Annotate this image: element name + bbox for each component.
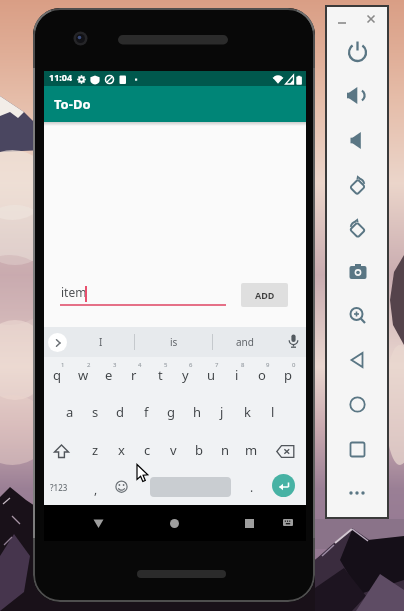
staticText: a <box>66 403 74 421</box>
staticText: 5 <box>164 361 168 369</box>
button[interactable]: a <box>59 400 81 424</box>
staticText: is <box>170 335 178 349</box>
staticText: r <box>131 366 137 384</box>
staticText: 11:04 <box>49 71 73 83</box>
button[interactable] <box>48 333 67 352</box>
staticText: o <box>258 366 266 384</box>
staticText: 3 <box>113 361 117 369</box>
button[interactable]: . <box>250 479 260 497</box>
button[interactable] <box>365 13 377 25</box>
button[interactable]: f <box>135 400 157 424</box>
button[interactable]: i <box>226 363 248 387</box>
staticText: e <box>105 366 113 384</box>
button[interactable]: s <box>84 400 106 424</box>
button[interactable] <box>53 444 70 459</box>
staticText: j <box>220 403 224 421</box>
staticText: i <box>235 366 239 384</box>
button[interactable]: m <box>240 438 262 462</box>
button[interactable] <box>348 306 369 327</box>
staticText: g <box>167 403 175 421</box>
staticText: 9 <box>266 361 270 369</box>
button[interactable]: v <box>162 438 184 462</box>
button[interactable] <box>336 14 348 26</box>
staticText: p <box>284 366 292 384</box>
staticText: z <box>92 441 99 459</box>
button[interactable]: y <box>174 363 196 387</box>
button[interactable]: n <box>214 438 236 462</box>
button[interactable]: ?123 <box>50 481 76 495</box>
staticText: q <box>53 366 61 384</box>
staticText: l <box>271 403 275 421</box>
button[interactable] <box>348 395 369 416</box>
button[interactable] <box>276 445 295 458</box>
staticText: n <box>221 441 230 459</box>
staticText: 1 <box>61 361 65 369</box>
button[interactable] <box>348 440 369 461</box>
button[interactable]: l <box>262 400 284 424</box>
staticText: To-Do <box>54 95 91 113</box>
button[interactable] <box>347 41 368 62</box>
button[interactable] <box>348 351 369 372</box>
button[interactable] <box>347 175 368 196</box>
staticText: k <box>244 403 251 421</box>
staticText: ?123 <box>50 482 68 493</box>
staticText: ADD <box>255 289 275 301</box>
staticText: b <box>195 441 203 459</box>
button[interactable] <box>115 480 129 494</box>
button[interactable]: is <box>163 332 185 352</box>
button[interactable]: ADD <box>241 283 288 307</box>
button[interactable] <box>170 519 179 528</box>
button[interactable]: I <box>90 332 112 352</box>
button[interactable] <box>93 519 104 529</box>
button[interactable]: g <box>160 400 182 424</box>
button[interactable]: q <box>46 363 68 387</box>
button[interactable]: j <box>211 400 233 424</box>
button[interactable]: t <box>149 363 171 387</box>
button[interactable]: o <box>251 363 273 387</box>
button[interactable]: z <box>84 438 106 462</box>
staticText: 6 <box>189 361 193 369</box>
staticText: . <box>250 479 254 495</box>
staticText: v <box>170 441 177 459</box>
button[interactable]: u <box>200 363 222 387</box>
button[interactable]: b <box>188 438 210 462</box>
button[interactable] <box>345 85 366 106</box>
staticText: w <box>78 366 89 384</box>
staticText: I <box>99 335 103 349</box>
button[interactable]: c <box>136 438 158 462</box>
staticText: y <box>182 366 189 384</box>
button[interactable]: w <box>72 363 94 387</box>
staticText: 4 <box>138 361 142 369</box>
button[interactable]: h <box>186 400 208 424</box>
button[interactable]: and <box>232 332 258 352</box>
staticText: u <box>207 366 216 384</box>
button[interactable] <box>288 334 299 350</box>
button[interactable] <box>347 218 368 239</box>
button[interactable]: , <box>94 481 104 497</box>
button[interactable]: e <box>98 363 120 387</box>
staticText: and <box>236 335 254 349</box>
button[interactable]: d <box>109 400 131 424</box>
staticText: d <box>116 403 124 421</box>
button[interactable] <box>272 474 295 497</box>
button[interactable] <box>346 130 367 151</box>
button[interactable] <box>283 519 293 527</box>
staticText: h <box>193 403 202 421</box>
button[interactable]: p <box>277 363 299 387</box>
staticText: f <box>144 403 149 421</box>
staticText: t <box>158 366 163 384</box>
staticText: c <box>144 441 151 459</box>
button[interactable]: x <box>110 438 132 462</box>
staticText: 2 <box>87 361 91 369</box>
staticText: m <box>245 441 258 459</box>
button[interactable]: k <box>236 400 258 424</box>
button[interactable] <box>347 486 368 507</box>
staticText: , <box>94 481 98 497</box>
button[interactable]: r <box>123 363 145 387</box>
staticText: s <box>92 403 99 421</box>
button[interactable] <box>348 262 369 283</box>
staticText: 7 <box>215 361 219 369</box>
staticText: x <box>118 441 125 459</box>
